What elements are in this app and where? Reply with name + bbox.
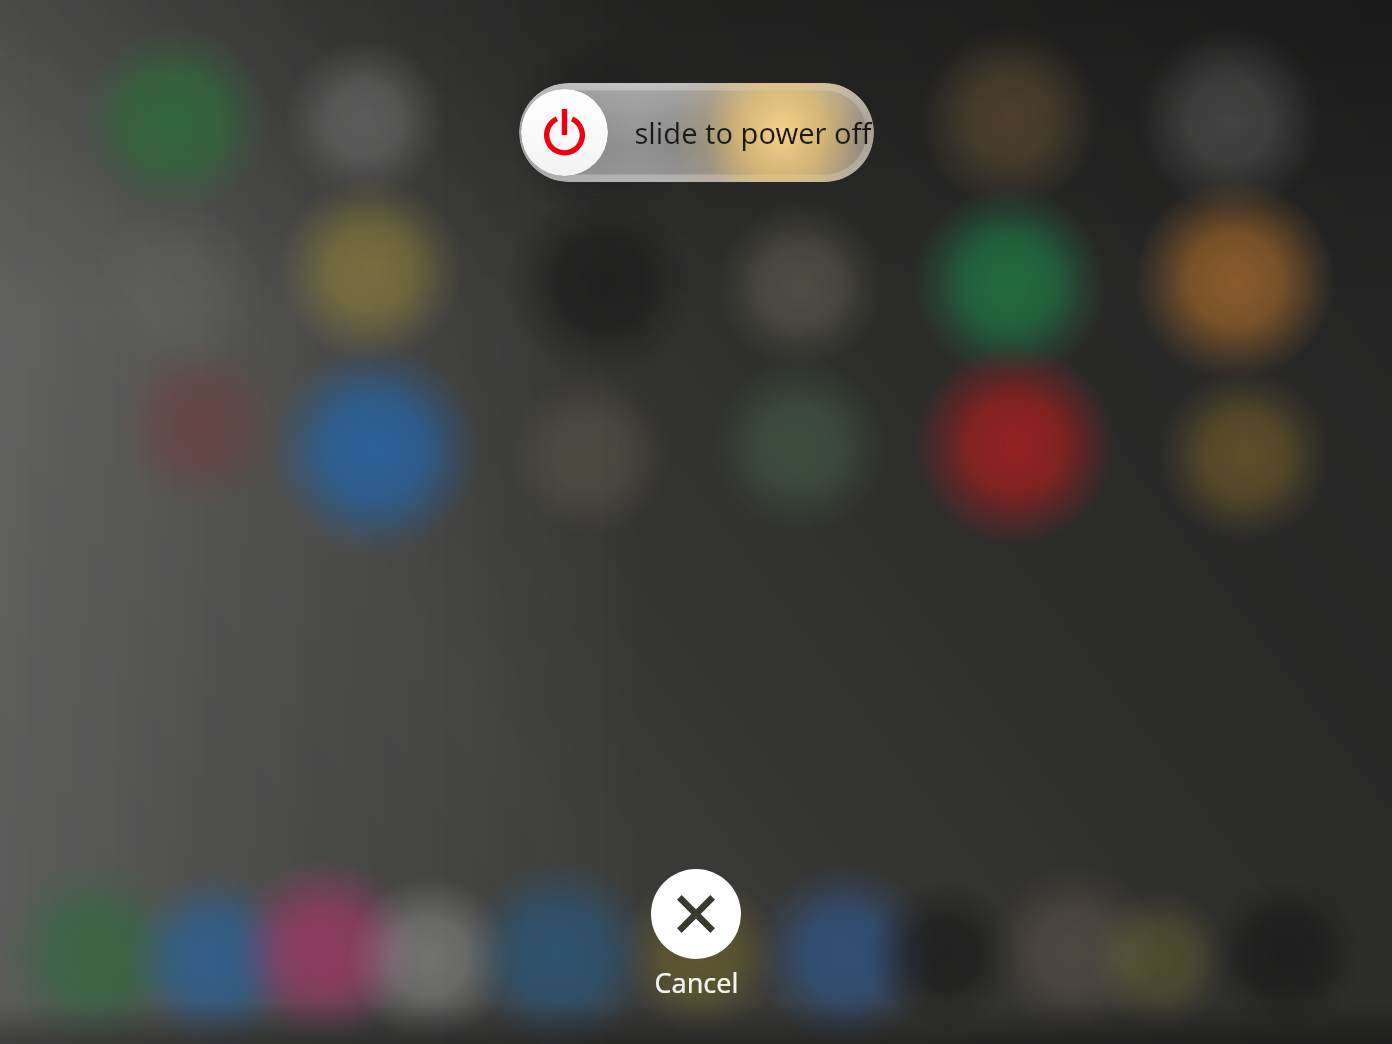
staticText: Cancel	[654, 964, 739, 1001]
button[interactable]: Cancel	[651, 869, 741, 1001]
button[interactable]: Power off	[521, 89, 608, 176]
staticText: slide to power off	[634, 113, 872, 152]
button[interactable]: slide to power off	[519, 83, 874, 182]
